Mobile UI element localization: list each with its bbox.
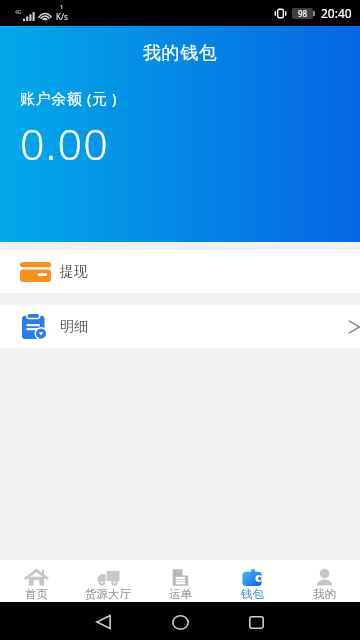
button[interactable]: 运单 [144,560,216,602]
staticText: 提现 [60,263,88,281]
button[interactable]: Back [83,605,123,639]
button[interactable]: 货源大厅 [72,560,144,602]
staticText: 我的钱包 [143,42,218,65]
button[interactable]: Home [160,605,200,639]
button[interactable]: 我的 [288,560,360,602]
staticText: 4G [15,9,22,16]
button[interactable]: 明细 [0,305,360,348]
button[interactable]: Recents [236,605,276,639]
staticText: 98 [298,8,308,19]
staticText: 我的 [313,587,336,601]
staticText: 0.00 [20,114,109,173]
staticText: 货源大厅 [85,587,131,601]
staticText: 钱包 [241,587,264,601]
button[interactable]: 钱包 [216,560,288,602]
staticText: 20:40 [321,5,352,21]
staticText: 运单 [169,587,192,601]
staticText: K/s [56,11,68,22]
button[interactable]: 提现 [0,250,360,293]
staticText: 账户余额 (元 ) [20,88,118,108]
staticText: 首页 [25,587,48,601]
button[interactable]: 首页 [0,560,72,602]
staticText: 1 [60,3,64,11]
staticText: 明细 [60,318,88,336]
